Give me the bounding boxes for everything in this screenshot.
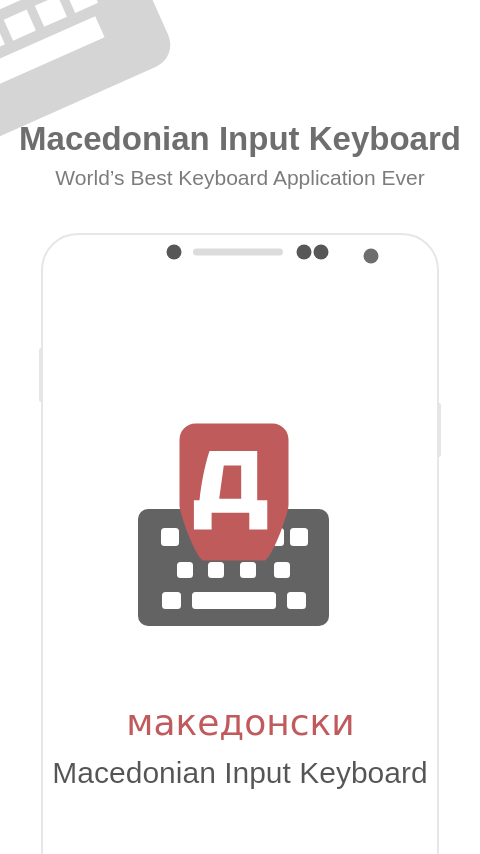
staticText: Macedonian Input Keyboard: [52, 756, 428, 790]
staticText: македонски: [126, 702, 355, 744]
staticText: Macedonian Input Keyboard: [19, 120, 461, 157]
staticText: World’s Best Keyboard Application Ever: [55, 166, 425, 189]
